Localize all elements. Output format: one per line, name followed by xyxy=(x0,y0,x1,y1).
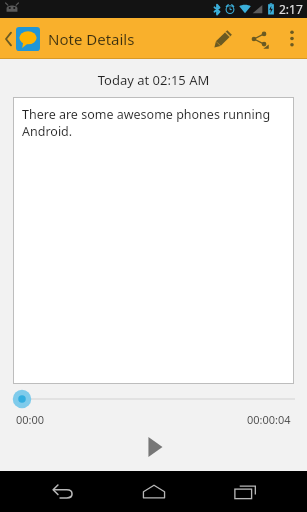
button[interactable]: Recent apps xyxy=(215,471,275,512)
staticText: 2:17 xyxy=(279,1,303,17)
button[interactable]: There are some awesome phones running An… xyxy=(14,98,293,383)
other: Navigate up xyxy=(4,31,13,47)
button[interactable]: Navigate up xyxy=(0,27,143,51)
staticText: There are some awesome phones running An… xyxy=(22,106,283,139)
button[interactable]: Share xyxy=(241,18,277,59)
button[interactable]: Edit xyxy=(205,18,241,59)
staticText: 00:00:04 xyxy=(247,412,291,427)
staticText: Note Details xyxy=(48,29,135,49)
button[interactable]: Home xyxy=(124,471,184,512)
staticText: 00:00 xyxy=(16,412,45,427)
button[interactable]: Playback position xyxy=(0,388,307,410)
button[interactable]: More options xyxy=(277,18,307,59)
staticText: Today at 02:15 AM xyxy=(0,71,307,89)
button[interactable]: Play xyxy=(134,433,174,461)
button[interactable]: Back xyxy=(32,471,92,512)
